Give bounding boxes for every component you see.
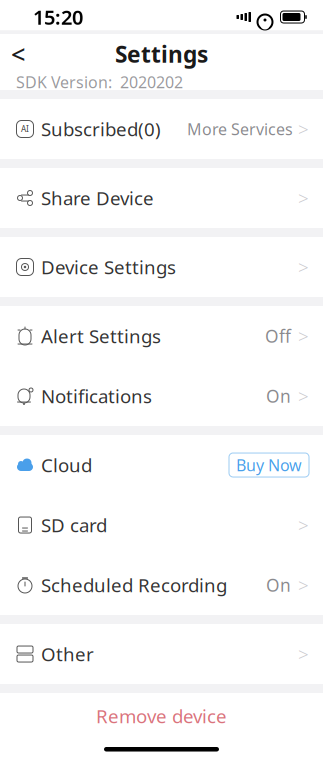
- button[interactable]: Back: [0, 34, 36, 74]
- staticText: Other: [41, 642, 94, 666]
- staticText: On: [266, 573, 291, 596]
- staticText: >: [298, 324, 309, 348]
- staticText: Notifications: [41, 384, 152, 408]
- staticText: Device Settings: [41, 255, 176, 279]
- button[interactable]: Notifications: [0, 366, 323, 426]
- staticText: Off: [265, 324, 291, 347]
- staticText: SD card: [41, 513, 107, 537]
- button[interactable]: Scheduled Recording: [0, 555, 323, 615]
- staticText: Settings: [115, 39, 208, 69]
- staticText: AI: [21, 124, 29, 134]
- staticText: Share Device: [41, 186, 154, 210]
- staticText: >: [298, 384, 309, 408]
- button[interactable]: AI: [0, 99, 323, 159]
- staticText: >: [298, 255, 309, 279]
- button[interactable]: SD card: [0, 495, 323, 555]
- staticText: >: [298, 117, 309, 141]
- button[interactable]: Buy Now: [229, 453, 309, 477]
- button[interactable]: Remove device: [0, 693, 323, 739]
- button[interactable]: Device Settings: [0, 237, 323, 297]
- staticText: Remove device: [96, 704, 227, 728]
- staticText: >: [298, 642, 309, 666]
- staticText: >: [298, 513, 309, 537]
- staticText: More Services: [187, 118, 293, 140]
- button[interactable]: Other: [0, 624, 323, 684]
- button[interactable]: Share Device: [0, 168, 323, 228]
- staticText: SDK Version: 2020202: [16, 71, 183, 93]
- staticText: Subscribed(0): [41, 117, 161, 141]
- staticText: On: [266, 384, 291, 407]
- staticText: Cloud: [41, 453, 92, 477]
- staticText: Scheduled Recording: [41, 573, 227, 597]
- button[interactable]: Cloud: [0, 435, 323, 495]
- button[interactable]: Alert Settings: [0, 306, 323, 366]
- staticText: <: [11, 37, 25, 71]
- staticText: Alert Settings: [41, 324, 161, 348]
- staticText: >: [298, 186, 309, 210]
- staticText: >: [298, 573, 309, 597]
- staticText: Buy Now: [236, 454, 302, 476]
